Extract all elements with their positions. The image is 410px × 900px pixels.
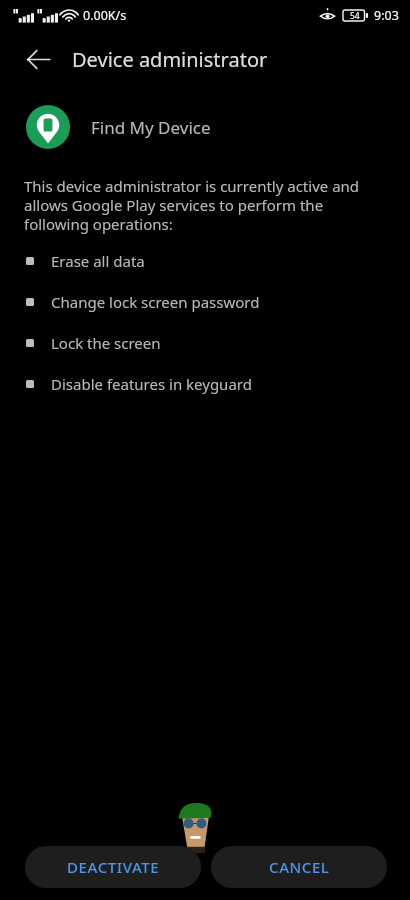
staticText: Change lock screen password	[51, 292, 260, 312]
staticText: Erase all data	[51, 251, 145, 271]
button[interactable]: Disable features in keyguard	[0, 363, 410, 404]
staticText: DEACTIVATE	[67, 857, 160, 877]
staticText: 9:03	[374, 7, 399, 24]
button[interactable]: Lock the screen	[0, 322, 410, 363]
button[interactable]: DEACTIVATE	[25, 846, 201, 888]
button[interactable]: Change lock screen password	[0, 281, 410, 322]
staticText: Lock the screen	[51, 333, 161, 353]
staticText: This device administrator is currently a…	[24, 176, 388, 235]
staticText: Find My Device	[91, 116, 211, 139]
staticText: Disable features in keyguard	[51, 374, 252, 394]
staticText: 0.00K/s	[83, 7, 127, 24]
staticText: 54	[350, 10, 360, 22]
button[interactable]: CANCEL	[211, 846, 387, 888]
button[interactable]: Erase all data	[0, 240, 410, 281]
staticText: CANCEL	[269, 857, 330, 877]
button[interactable]: Back	[14, 35, 62, 83]
staticText: Device administrator	[72, 46, 268, 73]
